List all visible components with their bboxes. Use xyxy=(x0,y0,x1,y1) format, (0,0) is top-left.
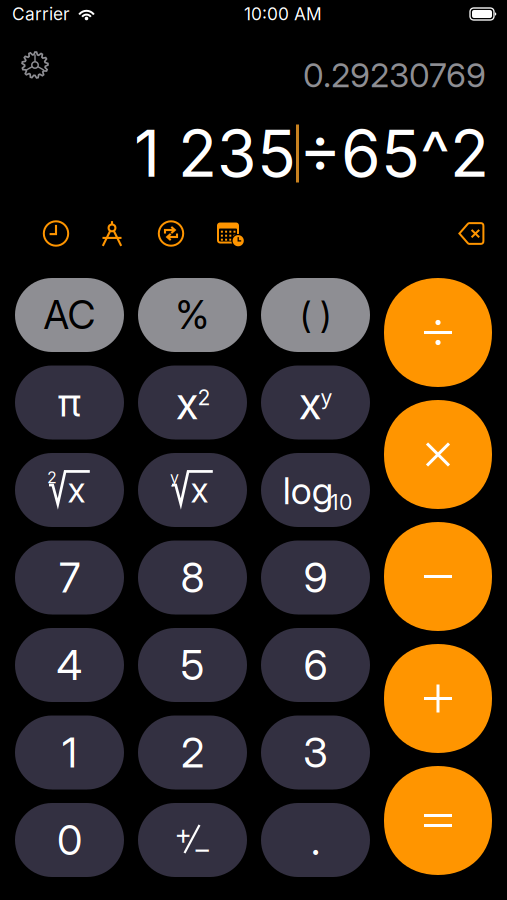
staticText: 7 xyxy=(59,552,80,602)
button[interactable]: Equals xyxy=(384,766,492,875)
staticText: AC xyxy=(43,292,95,338)
staticText: x xyxy=(176,378,199,430)
staticText: x xyxy=(299,378,322,430)
button[interactable]: Geometry xyxy=(98,219,126,247)
staticText: 0 xyxy=(57,815,82,865)
staticText: y xyxy=(320,385,332,410)
button[interactable]: Unit converter xyxy=(157,219,185,247)
staticText: 2 xyxy=(181,727,204,777)
button[interactable]: 2 xyxy=(138,715,247,789)
button[interactable]: % xyxy=(138,278,247,352)
staticText: log xyxy=(283,468,334,513)
staticText: 8 xyxy=(180,552,204,602)
button[interactable]: Plus xyxy=(384,644,492,753)
staticText: x xyxy=(190,469,208,511)
staticText: 9 xyxy=(303,552,327,602)
staticText: π xyxy=(57,379,81,426)
button[interactable]: AC xyxy=(15,278,124,352)
staticText: 2 xyxy=(197,385,210,410)
button[interactable]: π xyxy=(15,365,124,439)
staticText: ÷65^2 xyxy=(299,115,489,192)
staticText: Carrier xyxy=(12,3,70,24)
button[interactable]: nth root xyxy=(138,453,247,527)
staticText: 10:00 AM xyxy=(244,3,322,24)
staticText: 1 235 xyxy=(134,115,296,192)
button[interactable]: . xyxy=(261,803,370,877)
button[interactable]: 4 xyxy=(15,628,124,702)
button[interactable]: log base 10 xyxy=(261,453,370,527)
button[interactable]: x to the power y xyxy=(261,365,370,439)
staticText: x xyxy=(67,469,85,511)
staticText: 3 xyxy=(303,727,328,777)
button[interactable]: Date calculator xyxy=(217,219,245,247)
button[interactable]: plus minus xyxy=(138,803,247,877)
button[interactable]: Backspace xyxy=(458,220,485,246)
staticText: + xyxy=(174,819,191,851)
staticText: 5 xyxy=(180,640,204,690)
button[interactable]: 0 xyxy=(15,803,124,877)
button[interactable]: x squared xyxy=(138,365,247,439)
staticText: ( ) xyxy=(300,293,331,337)
button[interactable]: square root xyxy=(15,453,124,527)
staticText: % xyxy=(175,292,209,338)
button[interactable]: 3 xyxy=(261,715,370,789)
staticText: – xyxy=(195,833,208,865)
button[interactable]: History xyxy=(42,219,70,247)
button[interactable]: Multiply xyxy=(384,400,492,509)
button[interactable]: 9 xyxy=(261,540,370,614)
staticText: 2 xyxy=(47,468,57,487)
staticText: 0.29230769 xyxy=(303,55,486,95)
staticText: 10 xyxy=(330,489,352,515)
staticText: 1 xyxy=(62,727,77,777)
staticText: 4 xyxy=(56,640,82,690)
button[interactable]: Divide xyxy=(384,278,492,387)
staticText: 6 xyxy=(303,640,327,690)
button[interactable]: 5 xyxy=(138,628,247,702)
button[interactable]: 7 xyxy=(15,540,124,614)
staticText: y xyxy=(170,468,179,487)
button[interactable]: Settings xyxy=(20,50,50,80)
button[interactable]: Minus xyxy=(384,522,492,631)
button[interactable]: 8 xyxy=(138,540,247,614)
button[interactable]: 1 xyxy=(15,715,124,789)
button[interactable]: ( ) xyxy=(261,278,370,352)
staticText: . xyxy=(311,815,320,865)
button[interactable]: 6 xyxy=(261,628,370,702)
